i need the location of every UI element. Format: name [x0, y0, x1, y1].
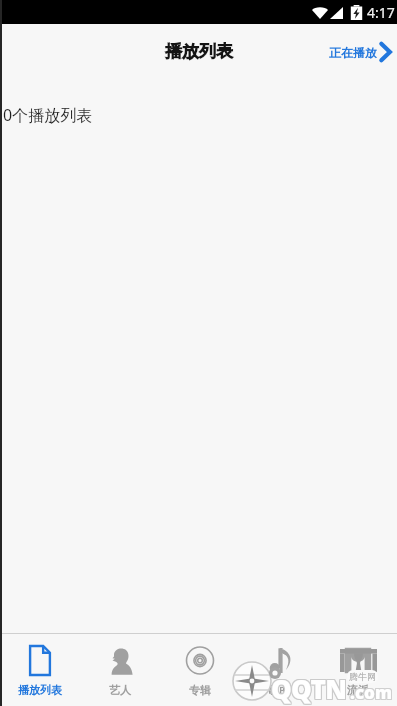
- staticText: QQTN: [270, 672, 346, 706]
- button[interactable]: 正在播放: [319, 33, 397, 71]
- staticText: 4:17: [367, 3, 395, 22]
- button[interactable]: 歌曲: [239, 634, 318, 706]
- staticText: .com: [349, 680, 391, 703]
- staticText: .com: [349, 682, 391, 705]
- button[interactable]: 专辑: [160, 634, 239, 706]
- staticText: QQTN: [270, 670, 346, 705]
- staticText: QQTN: [270, 671, 346, 706]
- staticText: 0个播放列表: [3, 104, 93, 126]
- staticText: QQTN: [271, 672, 347, 706]
- staticText: 正在播放: [329, 45, 377, 60]
- staticText: 专辑: [189, 683, 211, 697]
- staticText: .com: [350, 681, 392, 704]
- staticText: QQTN: [272, 670, 348, 705]
- staticText: .com: [350, 680, 392, 703]
- staticText: .com: [349, 681, 391, 704]
- staticText: 播放列表: [18, 683, 62, 697]
- staticText: QQTN: [272, 672, 348, 706]
- staticText: .com: [350, 682, 392, 705]
- staticText: QQTN: [272, 671, 348, 706]
- staticText: 流派: [347, 683, 369, 697]
- staticText: QQTN: [271, 671, 347, 706]
- staticText: 艺人: [109, 683, 131, 697]
- staticText: 歌曲: [268, 683, 290, 697]
- button[interactable]: 播放列表: [0, 634, 80, 706]
- staticText: 腾牛网: [349, 671, 376, 682]
- staticText: .com: [351, 681, 393, 704]
- button[interactable]: 艺人: [80, 634, 160, 706]
- staticText: QQTN: [271, 670, 347, 705]
- button[interactable]: 流派: [318, 634, 397, 706]
- staticText: 播放列表: [165, 41, 233, 62]
- staticText: .com: [351, 680, 393, 703]
- staticText: .com: [351, 682, 393, 705]
